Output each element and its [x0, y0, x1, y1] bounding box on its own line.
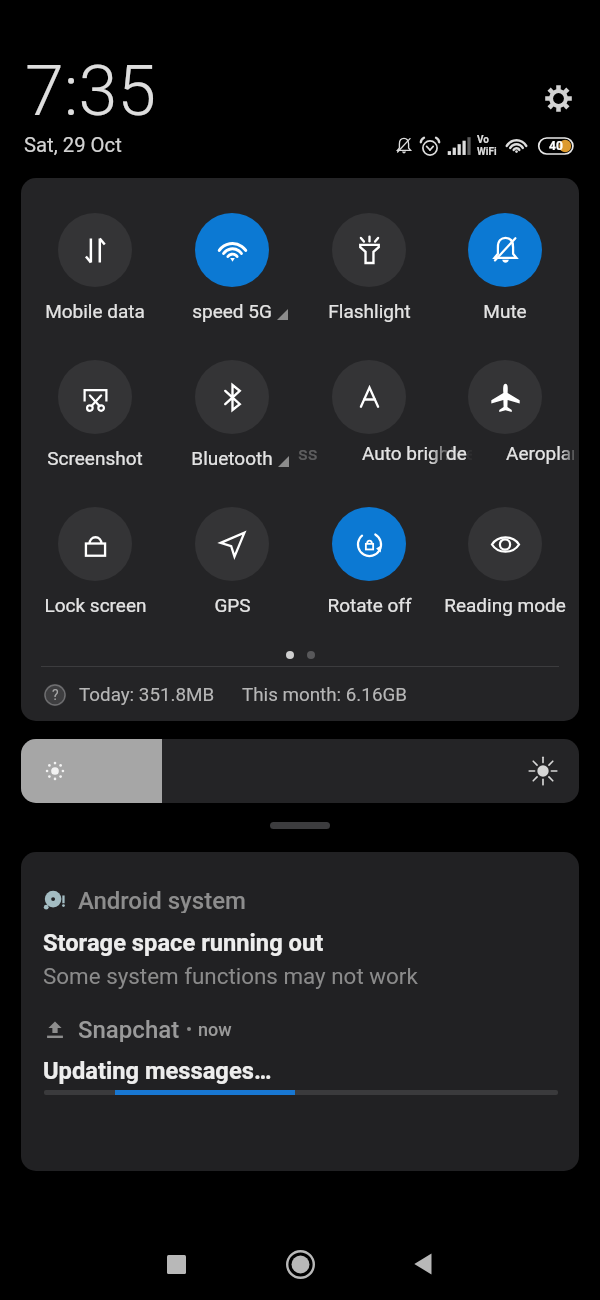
button[interactable]: Lock screen [25, 507, 165, 616]
button[interactable]: Reading mode [435, 507, 575, 616]
button[interactable] [299, 360, 439, 469]
staticText: 7:35 [25, 50, 157, 132]
button[interactable]: Rotate off [299, 507, 439, 616]
staticText: Aeroplane mode [506, 442, 574, 464]
button[interactable]: Settings [540, 80, 576, 116]
staticText: Storage space running out [43, 929, 324, 957]
staticText: Some system functions may not work [43, 963, 418, 989]
staticText: WiFi [477, 146, 497, 158]
button[interactable]: Bluetooth [162, 360, 302, 469]
staticText: now [198, 1019, 232, 1040]
staticText: Updating messages… [43, 1057, 272, 1085]
button[interactable]: Back [394, 1234, 454, 1294]
staticText: de [446, 442, 467, 464]
button[interactable]: speed 5G [162, 213, 302, 322]
button[interactable]: ? [44, 683, 407, 707]
staticText: Vo [477, 134, 489, 146]
staticText: Android system [78, 887, 246, 913]
staticText: speed 5G [192, 300, 272, 322]
staticText: Screenshot [47, 447, 143, 469]
staticText: Mute [483, 300, 527, 322]
button[interactable]: Recents [146, 1234, 206, 1294]
button[interactable]: Brightness [21, 739, 579, 803]
button[interactable]: Snapchat [44, 1016, 232, 1042]
button[interactable]: Android system [43, 887, 246, 913]
staticText: GPS [214, 594, 251, 616]
staticText: Lock screen [44, 594, 147, 616]
button[interactable]: Mobile data [25, 213, 165, 322]
staticText: ? [52, 687, 59, 703]
staticText: Today: 351.8MB [79, 684, 215, 706]
staticText: Auto brightness [362, 442, 472, 464]
button[interactable]: Mute [435, 213, 575, 322]
staticText: This month: 6.16GB [242, 684, 407, 706]
staticText: ss [298, 442, 318, 464]
staticText: 40 [549, 139, 563, 153]
button[interactable]: Screenshot [25, 360, 165, 469]
button[interactable]: Flashlight [299, 213, 439, 322]
staticText: Mobile data [45, 300, 145, 322]
button[interactable] [435, 360, 575, 469]
staticText: Reading mode [444, 594, 566, 616]
staticText: Rotate off [327, 594, 412, 616]
button[interactable]: Home [270, 1234, 330, 1294]
staticText: Sat, 29 Oct [24, 133, 122, 157]
button[interactable]: GPS [162, 507, 302, 616]
staticText: Snapchat [78, 1016, 180, 1042]
staticText: Flashlight [328, 300, 411, 322]
staticText: Bluetooth [191, 447, 273, 469]
